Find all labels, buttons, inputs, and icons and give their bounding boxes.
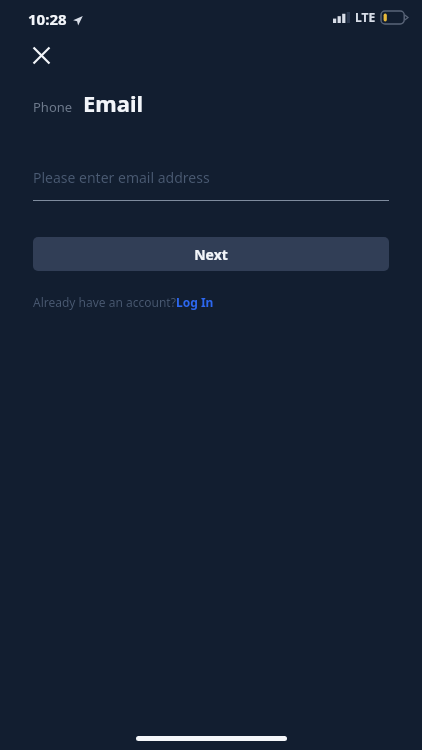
- staticText: Already have an account?: [33, 294, 176, 310]
- staticText: LTE: [355, 9, 376, 25]
- button[interactable]: Close: [22, 36, 60, 74]
- button[interactable]: Phone: [33, 98, 75, 118]
- staticText: Email: [83, 88, 144, 118]
- button[interactable]: Log In: [176, 294, 214, 310]
- button[interactable]: Next: [33, 237, 389, 271]
- staticText: Phone: [33, 98, 73, 116]
- staticText: Please enter email address: [33, 168, 210, 187]
- button[interactable]: Email: [83, 88, 144, 118]
- button[interactable]: Please enter email address: [33, 168, 389, 201]
- staticText: Next: [194, 245, 228, 264]
- staticText: 10:28: [28, 9, 67, 29]
- staticText: Log In: [176, 294, 214, 310]
